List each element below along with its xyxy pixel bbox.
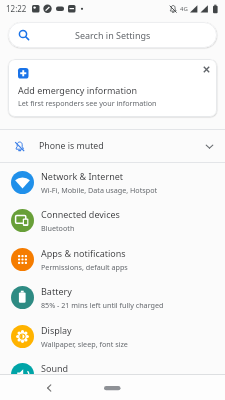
button[interactable]	[201, 64, 212, 75]
button[interactable]: Phone is muted	[0, 130, 225, 162]
button[interactable]: Add emergency information	[8, 59, 217, 117]
staticText: Connected devices	[41, 208, 120, 220]
staticText: Display	[41, 324, 72, 336]
staticText: Wi-Fi, Mobile, Data usage, Hotspot	[41, 185, 158, 195]
button[interactable]: Battery	[0, 278, 225, 317]
staticText: Volume, vibration, Do Not Disturb	[41, 377, 155, 387]
staticText: Add emergency information	[18, 84, 137, 96]
staticText: 4G	[180, 5, 188, 13]
staticText: Permissions, default apps	[41, 262, 128, 272]
staticText: Phone is muted	[39, 140, 104, 152]
staticText: Apps & notifications	[41, 247, 126, 259]
staticText: Search in Settings	[75, 29, 151, 41]
button[interactable]	[98, 380, 128, 396]
button[interactable]: Display	[0, 317, 225, 355]
button[interactable]: Network & Internet	[0, 163, 225, 201]
staticText: Bluetooth	[41, 223, 75, 233]
staticText: 12:22	[6, 3, 27, 14]
staticText: Network & Internet	[41, 170, 124, 182]
staticText: 85% - 21 mins left until fully charged	[41, 300, 164, 310]
staticText: Let first responders see your informatio…	[18, 98, 157, 108]
button[interactable]: Connected devices	[0, 201, 225, 240]
button[interactable]: Search in Settings	[8, 22, 217, 48]
staticText: Battery	[41, 285, 72, 297]
staticText: Wallpaper, sleep, font size	[41, 339, 128, 349]
button[interactable]: Apps & notifications	[0, 240, 225, 278]
staticText: Sound	[41, 362, 69, 374]
button[interactable]: Sound	[0, 355, 225, 394]
button[interactable]	[40, 378, 60, 398]
